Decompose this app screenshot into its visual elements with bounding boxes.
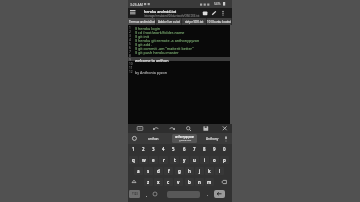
staticText: c <box>167 179 170 185</box>
staticText: 8 <box>129 54 131 58</box>
button[interactable]: u <box>190 156 199 164</box>
staticText: anthonyappson <box>175 135 195 139</box>
staticText: o <box>213 157 216 163</box>
button[interactable] <box>152 191 158 197</box>
button[interactable]: Anthony <box>203 133 222 144</box>
button[interactable]: m <box>205 178 214 186</box>
button[interactable]: e <box>149 156 158 164</box>
staticText: $ git init <box>135 34 150 39</box>
button[interactable]: n <box>195 178 204 186</box>
button[interactable]: p <box>220 156 229 164</box>
staticText: by Anthonia pyzon <box>135 70 168 75</box>
button[interactable]: 0 <box>220 146 229 152</box>
button[interactable] <box>222 126 228 131</box>
staticText: Adobe live cv.txt <box>158 20 181 24</box>
button[interactable]: h <box>185 167 194 175</box>
button[interactable]: x <box>154 178 163 186</box>
staticText: l <box>219 168 221 174</box>
staticText: $ heroku git:remote -a anthonypyzon <box>135 38 200 43</box>
button[interactable]: w <box>139 156 148 164</box>
staticText: Anthony <box>206 137 219 141</box>
staticText: . <box>207 192 208 197</box>
button[interactable]: o <box>210 156 219 164</box>
button[interactable]: 9 <box>210 146 219 152</box>
button[interactable]: 1 <box>129 146 138 152</box>
button[interactable] <box>153 126 159 131</box>
staticText: k <box>208 168 211 174</box>
button[interactable] <box>137 126 143 131</box>
staticText: 3 <box>152 146 155 152</box>
button[interactable]: l <box>215 167 224 175</box>
button[interactable] <box>203 126 209 131</box>
button[interactable] <box>167 191 200 198</box>
button[interactable]: z <box>144 178 153 186</box>
staticText: 2 <box>129 30 131 34</box>
staticText: 7 <box>193 146 196 152</box>
staticText: g <box>178 168 181 174</box>
button[interactable]: 2 <box>139 146 148 152</box>
staticText: y <box>183 157 186 163</box>
button[interactable]: t <box>170 156 179 164</box>
staticText: 9 <box>129 58 131 62</box>
button[interactable]: 10 Ubuntu bootstr <box>207 18 232 25</box>
staticText: 10 Ubuntu bootstr <box>207 20 232 24</box>
button[interactable]: 8 <box>200 146 209 152</box>
staticText: 11 <box>129 66 133 70</box>
button[interactable]: 4 <box>159 146 168 152</box>
button[interactable]: , <box>143 190 150 198</box>
staticText: $ git push heroku master <box>135 50 179 55</box>
button[interactable] <box>210 9 218 17</box>
staticText: 5 <box>172 146 175 152</box>
button[interactable] <box>130 10 136 14</box>
button[interactable]: Adobe live cv.txt <box>156 18 182 25</box>
button[interactable] <box>201 9 209 17</box>
staticText: s <box>147 168 150 174</box>
button[interactable] <box>186 126 192 132</box>
button[interactable] <box>219 178 229 186</box>
button[interactable]: y <box>180 156 189 164</box>
button[interactable]: j <box>195 167 204 175</box>
button[interactable]: f <box>164 167 173 175</box>
staticText: 1 <box>132 146 135 152</box>
button[interactable]: 3 <box>149 146 158 152</box>
staticText: r <box>163 157 165 163</box>
staticText: $ git commit -am "maiterit better" <box>135 46 194 51</box>
button[interactable]: 7 <box>190 146 199 152</box>
staticText: 3 <box>129 34 131 38</box>
button[interactable]: anthon <box>142 133 164 144</box>
staticText: b <box>188 179 191 185</box>
staticText: u <box>193 157 196 163</box>
button[interactable] <box>214 190 225 198</box>
button[interactable]: d <box>154 167 163 175</box>
staticText: 2 <box>142 146 145 152</box>
button[interactable] <box>129 178 139 186</box>
staticText: welcome to anthon <box>135 58 169 63</box>
button[interactable]: g <box>175 167 184 175</box>
button[interactable]: 5 <box>169 146 178 152</box>
button[interactable]: v <box>174 178 183 186</box>
staticText: t <box>174 157 176 163</box>
button[interactable]: 6 <box>180 146 189 152</box>
staticText: 7 <box>129 50 131 54</box>
button[interactable]: r <box>159 156 168 164</box>
button[interactable]: i <box>200 156 209 164</box>
staticText: 8 <box>203 146 206 152</box>
button[interactable]: . <box>204 190 210 198</box>
button[interactable]: b <box>185 178 194 186</box>
button[interactable]: Termux android.txt <box>128 18 156 25</box>
button[interactable] <box>220 9 226 17</box>
button[interactable]: k <box>205 167 214 175</box>
staticText: p <box>223 157 226 163</box>
staticText: Termux android.txt <box>129 20 155 24</box>
staticText: 4 <box>162 146 165 152</box>
button[interactable]: ?123 <box>129 190 140 198</box>
button[interactable]: q <box>129 156 138 164</box>
button[interactable]: stripe SDK.txt <box>182 18 207 25</box>
button[interactable]: c <box>164 178 173 186</box>
button[interactable]: anthonyappson <box>172 134 197 143</box>
button[interactable]: a <box>134 167 143 175</box>
button[interactable] <box>169 126 175 131</box>
staticText: ?123 <box>132 192 138 196</box>
staticText: heroku android.txt <box>144 9 177 14</box>
button[interactable]: s <box>144 167 153 175</box>
